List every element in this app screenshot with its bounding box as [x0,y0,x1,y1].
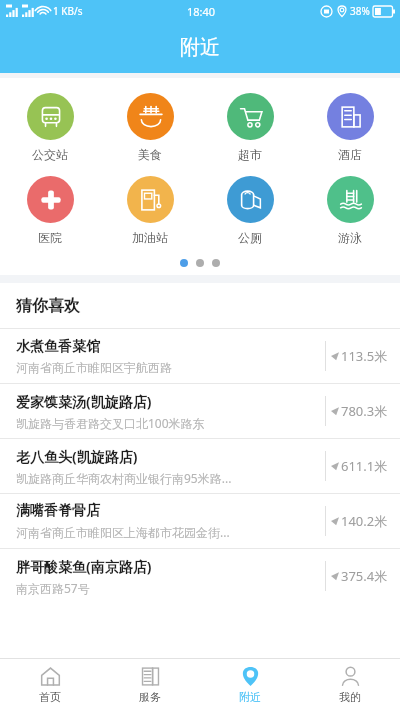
staticText: 南京西路57号 [16,580,90,596]
staticText: 河南省商丘市睢阳区上海都市花园金街... [16,524,230,540]
button[interactable]: 老八鱼头(凯旋路店) [0,438,400,493]
staticText: 1 KB/s [53,4,83,18]
staticText: 780.3米 [341,402,388,420]
staticText: 游泳 [338,230,362,245]
staticText: 38% [350,4,370,18]
staticText: 凯旋路与香君路交叉口北100米路东 [16,415,205,431]
staticText: 公交站 [32,147,68,162]
staticText: 18:40 [187,4,216,19]
button[interactable]: 爱家馍菜汤(凯旋路店) [0,383,400,438]
staticText: 611.1米 [341,457,388,475]
staticText: 河南省商丘市睢阳区宇航西路 [16,360,172,375]
staticText: 猜你喜欢 [16,296,80,316]
button[interactable]: 我的 [300,659,400,711]
staticText: 胖哥酸菜鱼(南京路店) [16,557,152,576]
staticText: 服务 [139,690,161,704]
staticText: 附近 [239,690,261,704]
staticText: 满嘴香脊骨店 [16,502,100,520]
staticText: 首页 [39,690,61,704]
button[interactable]: 附近 [200,659,300,711]
staticText: 水煮鱼香菜馆 [16,338,100,356]
button[interactable]: 公交站 [0,93,100,162]
button[interactable]: 满嘴香脊骨店 [0,493,400,548]
staticText: 140.2米 [341,512,388,530]
staticText: 酒店 [338,147,362,162]
button[interactable]: 美食 [100,93,200,162]
staticText: 老八鱼头(凯旋路店) [16,447,138,466]
staticText: 凯旋路商丘华商农村商业银行南95米路... [16,470,232,486]
button[interactable]: 超市 [200,93,300,162]
staticText: 美食 [138,147,162,162]
staticText: 爱家馍菜汤(凯旋路店) [16,392,152,411]
button[interactable]: 医院 [0,176,100,245]
staticText: 附近 [180,35,220,60]
staticText: 113.5米 [341,347,388,365]
button[interactable]: 酒店 [300,93,400,162]
staticText: 375.4米 [341,567,388,585]
staticText: 超市 [238,147,262,162]
button[interactable]: 加油站 [100,176,200,245]
button[interactable]: 公厕 [200,176,300,245]
staticText: 公厕 [238,230,262,245]
button[interactable]: 首页 [0,659,100,711]
button[interactable]: 游泳 [300,176,400,245]
button[interactable]: 水煮鱼香菜馆 [0,328,400,383]
staticText: 医院 [38,230,62,245]
staticText: 加油站 [132,230,168,245]
button[interactable]: 胖哥酸菜鱼(南京路店) [0,548,400,603]
button[interactable]: 服务 [100,659,200,711]
staticText: 我的 [339,690,361,704]
